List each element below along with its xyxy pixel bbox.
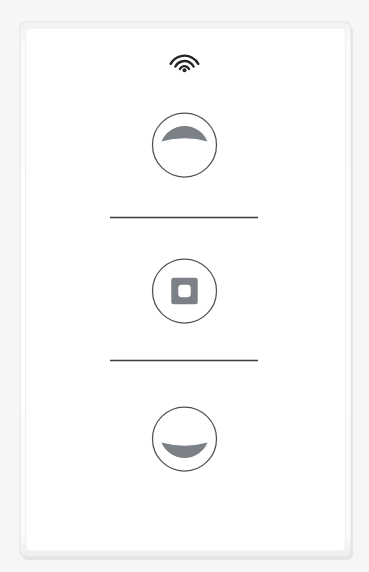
button[interactable]: Stop shutter [152, 259, 216, 323]
button[interactable]: Raise shutter [152, 113, 216, 177]
button[interactable]: Lower shutter [152, 407, 216, 471]
button[interactable]: Wi-Fi status [162, 45, 206, 79]
